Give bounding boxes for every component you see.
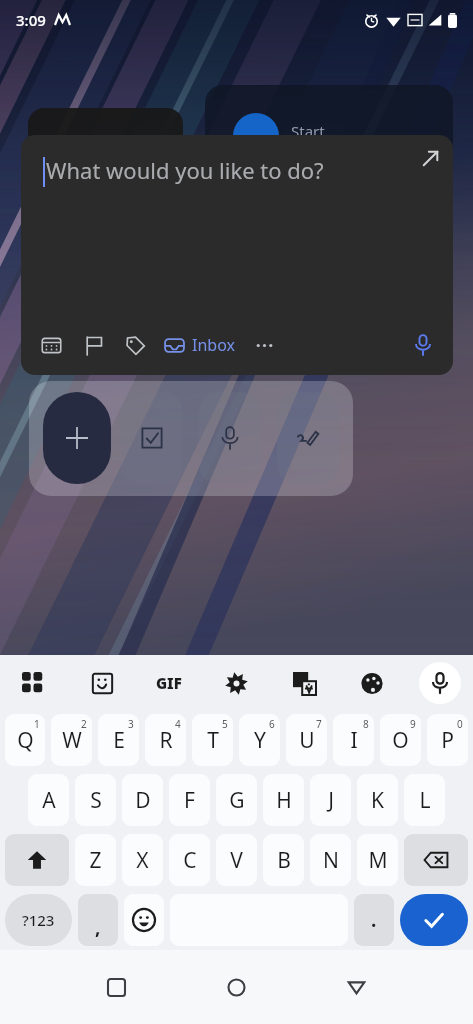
button[interactable]: Handwriting [277,392,339,484]
staticText: A [42,786,56,815]
button[interactable]: I [333,714,374,766]
button[interactable]: Clipboard [12,662,54,704]
button[interactable]: Comma [78,894,118,946]
button[interactable]: W [51,714,92,766]
staticText: 3:09 [16,10,46,30]
button[interactable]: J [310,774,351,826]
staticText: U [299,726,315,755]
staticText: V [230,846,243,875]
button[interactable]: N [310,834,351,886]
staticText: P [441,726,454,755]
button[interactable]: X [122,834,163,886]
staticText: F [184,786,195,815]
button[interactable]: Done [400,894,468,946]
button[interactable]: E [98,714,139,766]
button[interactable]: H [263,774,304,826]
button[interactable]: D [122,774,163,826]
button[interactable]: Shift [5,834,69,886]
staticText: , [95,914,101,940]
staticText: 7 [316,717,322,731]
staticText: N [323,846,339,875]
button[interactable]: Voice input [405,327,441,363]
staticText: 8 [363,717,369,731]
button[interactable]: S [75,774,116,826]
staticText: B [277,846,291,875]
staticText: GIF [156,673,182,693]
staticText: H [276,786,292,815]
staticText: S [90,786,102,815]
staticText: I [350,726,358,755]
staticText: W [62,726,82,755]
staticText: C [183,846,197,875]
button[interactable]: U [286,714,327,766]
staticText: 2 [81,717,87,731]
button[interactable]: Translate [283,662,325,704]
staticText: E [113,726,125,755]
button[interactable]: Q [5,714,45,766]
button[interactable]: A [28,774,69,826]
button[interactable]: C [169,834,210,886]
staticText: What would you like to do? [46,155,324,185]
staticText: ?123 [22,910,55,930]
button[interactable]: B [263,834,304,886]
staticText: 3 [128,717,134,731]
staticText: J [328,786,334,815]
staticText: L [419,786,431,815]
button[interactable]: Period [354,894,394,946]
button[interactable]: Settings [215,662,257,704]
button[interactable]: V [216,834,257,886]
button[interactable]: Voice typing [419,662,461,704]
button[interactable]: Z [75,834,116,886]
button[interactable]: T [192,714,233,766]
button[interactable]: K [357,774,398,826]
button[interactable]: Flag [77,329,109,361]
staticText: M [368,846,388,875]
button[interactable]: Task [121,392,183,484]
staticText: 1 [34,717,40,731]
staticText: D [135,786,151,815]
staticText: 9 [410,717,416,731]
button[interactable]: P [427,714,468,766]
button[interactable]: G [216,774,257,826]
button[interactable]: Label [119,329,151,361]
staticText: K [371,786,384,815]
button[interactable]: More options [248,329,280,361]
button[interactable]: R [145,714,186,766]
button[interactable]: Home [214,965,258,1009]
button[interactable]: M [357,834,398,886]
staticText: T [207,726,219,755]
button[interactable]: L [404,774,445,826]
staticText: G [229,786,245,815]
staticText: R [159,726,173,755]
button[interactable]: Y [239,714,280,766]
staticText: Inbox [192,334,235,356]
button[interactable]: Voice note [199,392,261,484]
staticText: Q [17,726,34,755]
button[interactable]: Add [43,392,111,484]
staticText: 4 [175,717,181,731]
button[interactable]: GIF [149,663,189,703]
staticText: X [136,846,149,875]
button[interactable]: Expand [413,141,447,175]
staticText: 6 [269,717,275,731]
button[interactable]: O [380,714,421,766]
staticText: Start [291,121,325,141]
button[interactable]: Calendar [35,329,67,361]
staticText: . [371,907,377,933]
button[interactable]: Symbols [5,894,72,946]
button[interactable]: Backspace [404,834,468,886]
staticText: Y [254,726,266,755]
button[interactable]: Emoji [124,894,164,946]
staticText: O [392,726,409,755]
staticText: 0 [457,717,463,731]
button[interactable]: Back [334,965,378,1009]
button[interactable]: Theme [351,662,393,704]
button[interactable]: Inbox [159,329,240,361]
staticText: Z [89,846,102,875]
button[interactable]: Stickers [81,662,123,704]
button[interactable]: Recent apps [94,965,138,1009]
button[interactable]: F [169,774,210,826]
staticText: 5 [222,717,228,731]
